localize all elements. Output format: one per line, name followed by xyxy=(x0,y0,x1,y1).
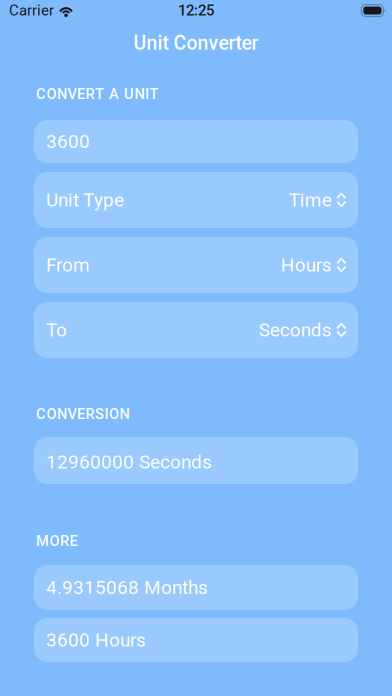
staticText: 12960000 Seconds xyxy=(46,451,212,473)
staticText: 12:25 xyxy=(178,2,214,19)
button[interactable]: To xyxy=(34,302,358,358)
staticText: To xyxy=(46,319,67,341)
staticText: Time xyxy=(289,189,332,211)
staticText: Hours xyxy=(281,254,332,276)
staticText: Unit Type xyxy=(46,189,124,211)
staticText: MORE xyxy=(36,532,77,550)
staticText: Unit Converter xyxy=(133,32,258,54)
staticText: 4.9315068 Months xyxy=(46,576,208,599)
button[interactable]: From xyxy=(34,237,358,293)
staticText: 3600 xyxy=(46,130,90,153)
staticText: 3600 Hours xyxy=(46,629,146,651)
staticText: CONVERT A UNIT xyxy=(36,85,158,103)
button[interactable]: Unit Type xyxy=(34,172,358,228)
staticText: From xyxy=(46,254,90,276)
staticText: CONVERSION xyxy=(36,405,129,423)
staticText: Carrier xyxy=(9,2,54,19)
staticText: Seconds xyxy=(259,319,332,341)
